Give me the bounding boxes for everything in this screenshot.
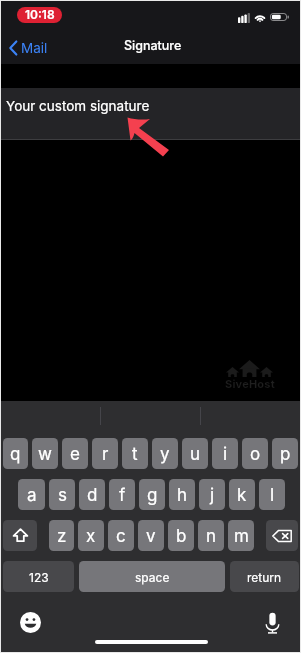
button[interactable]: b: [168, 520, 194, 551]
staticText: space: [135, 570, 170, 585]
staticText: h: [177, 485, 188, 506]
staticText: b: [176, 526, 187, 547]
button[interactable]: g: [139, 479, 165, 510]
button[interactable]: Shift: [3, 520, 37, 551]
staticText: w: [38, 444, 52, 465]
button[interactable]: y: [152, 438, 178, 469]
staticText: y: [160, 444, 170, 465]
button[interactable]: z: [49, 520, 74, 551]
button[interactable]: w: [32, 438, 58, 469]
staticText: Your custom signature: [6, 98, 150, 114]
button[interactable]: t: [122, 438, 148, 469]
button[interactable]: j: [199, 479, 225, 510]
staticText: return: [247, 570, 282, 585]
staticText: a: [27, 485, 37, 506]
staticText: o: [250, 444, 261, 465]
staticText: q: [10, 444, 21, 465]
staticText: 10:18: [25, 7, 55, 22]
button[interactable]: space: [79, 561, 225, 592]
button[interactable]: i: [212, 438, 238, 469]
staticText: z: [57, 526, 67, 547]
staticText: c: [116, 526, 126, 547]
staticText: 123: [29, 570, 49, 585]
button[interactable]: l: [259, 479, 285, 510]
button[interactable]: q: [3, 438, 28, 469]
button[interactable]: n: [198, 520, 224, 551]
staticText: r: [102, 444, 109, 465]
button[interactable]: c: [108, 520, 134, 551]
button[interactable]: r: [92, 438, 118, 469]
button[interactable]: k: [229, 479, 255, 510]
staticText: t: [132, 444, 138, 465]
button[interactable]: d: [79, 479, 105, 510]
button[interactable]: x: [78, 520, 104, 551]
button[interactable]: s: [49, 479, 75, 510]
staticText: m: [234, 526, 249, 547]
button[interactable]: h: [169, 479, 195, 510]
staticText: j: [210, 485, 215, 506]
button[interactable]: u: [182, 438, 208, 469]
button[interactable]: o: [242, 438, 268, 469]
button[interactable]: 123: [3, 561, 74, 592]
staticText: l: [270, 485, 275, 506]
staticText: u: [190, 444, 201, 465]
button[interactable]: Dictation: [263, 611, 281, 634]
staticText: n: [206, 526, 217, 547]
button[interactable]: Emoji: [19, 611, 41, 633]
button[interactable]: Mail: [0, 32, 58, 63]
staticText: s: [58, 485, 67, 506]
staticText: Mail: [21, 40, 48, 56]
staticText: x: [86, 526, 96, 547]
button[interactable]: m: [228, 520, 254, 551]
button[interactable]: Recording 10:18: [17, 7, 62, 23]
staticText: d: [87, 485, 98, 506]
staticText: f: [119, 485, 126, 506]
staticText: k: [237, 485, 247, 506]
button[interactable]: return: [230, 561, 299, 592]
staticText: g: [147, 485, 158, 506]
button[interactable]: p: [272, 438, 298, 469]
button[interactable]: v: [138, 520, 164, 551]
button[interactable]: Your custom signature: [0, 88, 301, 139]
staticText: i: [223, 444, 228, 465]
staticText: e: [70, 444, 80, 465]
staticText: p: [280, 444, 291, 465]
button[interactable]: e: [62, 438, 88, 469]
button[interactable]: a: [18, 479, 45, 510]
button[interactable]: Backspace: [266, 520, 298, 551]
staticText: SiveHost: [225, 377, 275, 390]
button[interactable]: f: [109, 479, 135, 510]
staticText: v: [146, 526, 156, 547]
staticText: Signature: [124, 38, 182, 53]
